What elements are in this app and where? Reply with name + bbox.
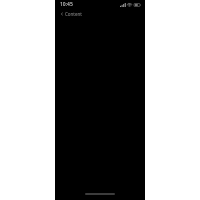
- button[interactable]: Back: [59, 11, 64, 16]
- button[interactable]: Back: [55, 9, 145, 18]
- staticText: 10:45: [60, 1, 73, 8]
- staticText: Content: [65, 11, 82, 17]
